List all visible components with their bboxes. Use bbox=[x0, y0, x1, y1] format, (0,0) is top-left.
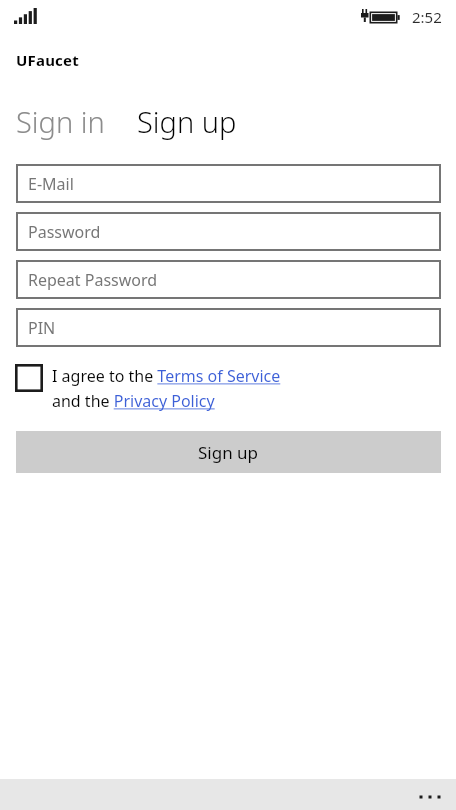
button[interactable]: E-Mail bbox=[16, 164, 441, 203]
button[interactable]: Sign up bbox=[16, 431, 441, 473]
staticText: Sign in bbox=[16, 102, 105, 141]
button[interactable]: More options bbox=[408, 779, 456, 810]
button[interactable]: PIN bbox=[16, 308, 441, 347]
button[interactable]: Sign up bbox=[135, 100, 239, 143]
staticText: Password bbox=[28, 221, 101, 243]
staticText: Repeat Password bbox=[28, 269, 158, 291]
button[interactable]: and the Privacy Policy bbox=[52, 390, 215, 412]
staticText: UFaucet bbox=[16, 50, 79, 70]
staticText: Sign up bbox=[198, 441, 259, 464]
staticText: Sign up bbox=[137, 102, 237, 141]
staticText: E-Mail bbox=[28, 173, 74, 195]
staticText: 2:52 bbox=[412, 7, 442, 27]
button[interactable]: Password bbox=[16, 212, 441, 251]
button[interactable]: Sign in bbox=[14, 100, 107, 143]
button[interactable]: I agree to the Terms of Service bbox=[52, 365, 281, 387]
button[interactable]: Repeat Password bbox=[16, 260, 441, 299]
button[interactable]: I agree to the Terms of Service bbox=[15, 364, 43, 392]
staticText: PIN bbox=[28, 317, 56, 339]
